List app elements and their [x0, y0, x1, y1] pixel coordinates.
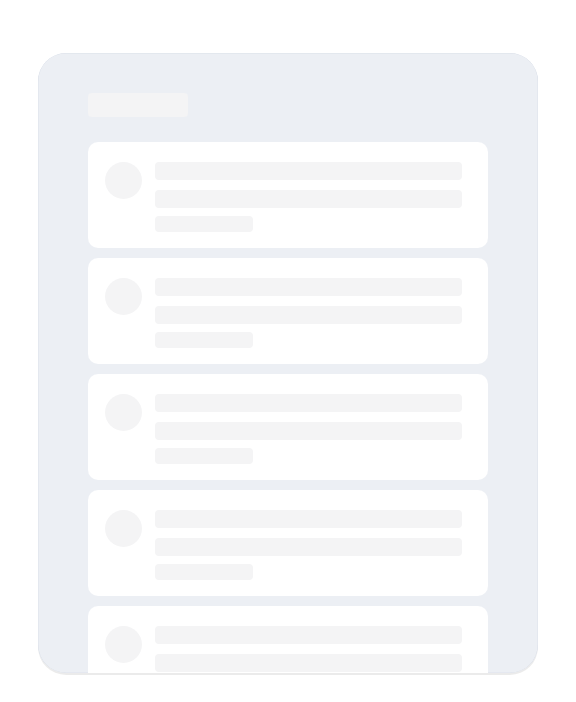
other: Avatar placeholder 4	[105, 510, 142, 547]
button[interactable]: Avatar placeholder 1	[88, 142, 488, 248]
other: Avatar placeholder 2	[105, 278, 142, 315]
other: Avatar placeholder 3	[105, 394, 142, 431]
button[interactable]: Avatar placeholder 3	[88, 374, 488, 480]
button[interactable]: Avatar placeholder 4	[88, 490, 488, 596]
button[interactable]: Avatar placeholder 5	[88, 606, 488, 673]
other: Avatar placeholder 1	[105, 162, 142, 199]
other: Avatar placeholder 5	[105, 626, 142, 663]
button[interactable]: Avatar placeholder 2	[88, 258, 488, 364]
